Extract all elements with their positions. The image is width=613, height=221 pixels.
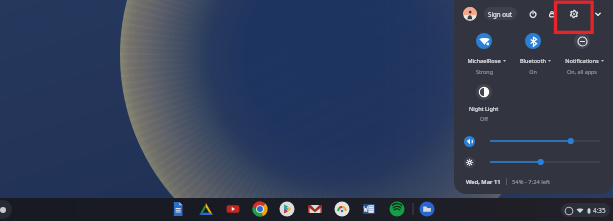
button[interactable]: Chrome <box>250 199 270 219</box>
button[interactable]: Notifications <box>558 33 606 75</box>
staticText: Bluetooth <box>520 57 546 65</box>
button[interactable]: Night Light <box>460 84 508 124</box>
button[interactable]: Files <box>417 199 437 219</box>
button[interactable]: Play Store <box>277 199 297 219</box>
staticText: 54% - 7:24 left <box>512 178 551 186</box>
button[interactable]: Account <box>463 7 477 21</box>
button[interactable]: Google Docs <box>168 199 188 219</box>
button[interactable]: Status tray <box>561 203 610 217</box>
button[interactable]: Word <box>359 199 379 219</box>
button[interactable]: MichaelRose <box>460 33 508 75</box>
button[interactable]: Power <box>523 4 542 23</box>
button[interactable]: Collapse <box>588 4 607 23</box>
button[interactable]: Spotify <box>387 199 407 219</box>
button[interactable]: Google Drive <box>196 199 216 219</box>
button[interactable]: Volume <box>464 136 475 147</box>
button[interactable]: Bluetooth <box>509 33 557 75</box>
button[interactable]: Chrome Canvas <box>332 199 352 219</box>
staticText: MichaelRose <box>467 57 501 65</box>
button[interactable]: Brightness <box>464 157 475 168</box>
staticText: Sign out <box>488 10 513 18</box>
staticText: On <box>529 68 537 75</box>
button[interactable] <box>490 135 600 147</box>
staticText: 4:35 <box>593 206 606 215</box>
staticText: Off <box>480 115 488 122</box>
button[interactable] <box>490 156 600 168</box>
button[interactable]: Settings <box>564 4 583 23</box>
staticText: Strong <box>476 68 493 75</box>
button[interactable]: Sign out <box>484 7 517 20</box>
staticText: Notifications <box>565 57 599 65</box>
button[interactable]: Launcher <box>0 200 12 219</box>
button[interactable]: YouTube <box>223 199 243 219</box>
button[interactable]: Gmail <box>305 199 325 219</box>
staticText: Night Light <box>469 105 499 113</box>
staticText: Wed, Mar 11 <box>466 178 501 186</box>
staticText: On, all apps <box>567 68 597 75</box>
button[interactable]: Lock screen <box>542 4 561 23</box>
